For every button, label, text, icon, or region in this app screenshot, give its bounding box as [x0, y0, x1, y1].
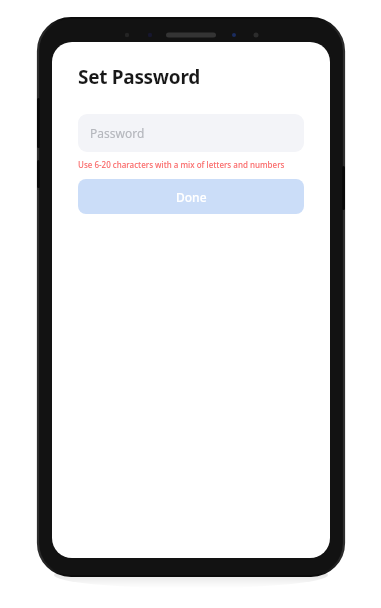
button[interactable]: Password	[78, 114, 304, 152]
staticText: Use 6-20 characters with a mix of letter…	[78, 159, 304, 170]
staticText: Set Password	[78, 64, 200, 90]
staticText: Done	[176, 189, 207, 205]
staticText: Password	[90, 125, 145, 141]
button[interactable]: Done	[78, 179, 304, 214]
